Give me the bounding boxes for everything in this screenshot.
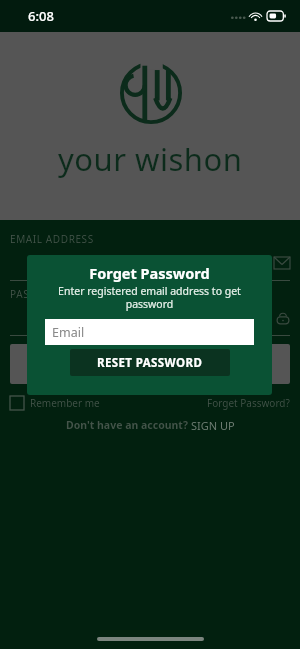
staticText: PASSWORD (10, 287, 69, 301)
button[interactable]: Forget Password? (207, 396, 290, 410)
staticText: Forget Password (89, 263, 210, 283)
other: Email (274, 257, 290, 269)
button[interactable]: RESET PASSWORD (70, 349, 230, 376)
staticText: Don't have an account? (66, 418, 191, 432)
button[interactable] (10, 344, 290, 384)
staticText: RESET PASSWORD (97, 355, 203, 371)
staticText: 6:08 (28, 7, 54, 25)
button[interactable]: Email (45, 319, 254, 345)
staticText: Remember me (30, 396, 100, 410)
staticText: your wishon (58, 138, 243, 180)
button[interactable]: SIGN UP (191, 418, 235, 433)
staticText: Email (52, 324, 85, 341)
staticText: EMAIL ADDRESS (10, 232, 94, 246)
staticText: Enter registered email address to get pa… (45, 284, 254, 311)
other: Password (276, 311, 290, 325)
button[interactable]: Remember me (10, 396, 100, 410)
